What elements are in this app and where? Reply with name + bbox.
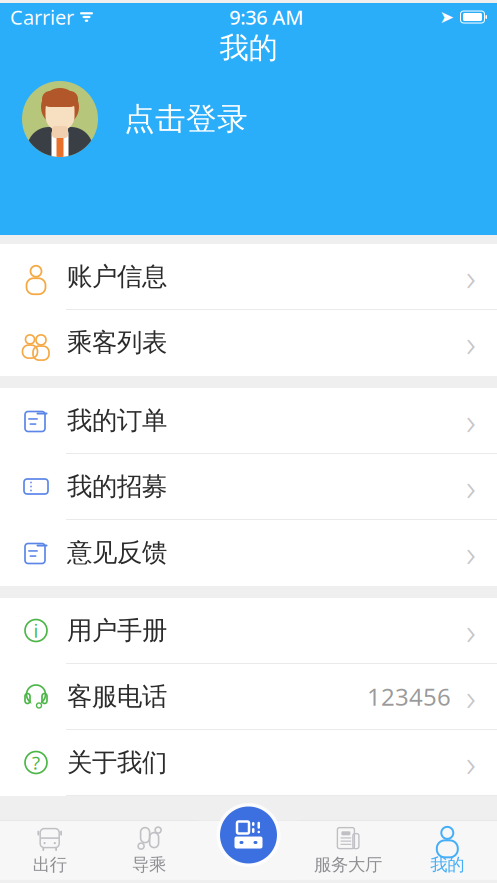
- button[interactable]: 账户信息: [0, 244, 497, 310]
- button[interactable]: ?: [0, 730, 497, 796]
- staticText: 用户手册: [67, 615, 167, 646]
- staticText: ?: [32, 750, 40, 775]
- button[interactable]: 服务大厅: [298, 821, 398, 880]
- staticText: 出行: [33, 854, 67, 875]
- staticText: 123456: [367, 681, 451, 712]
- staticText: ›: [466, 672, 476, 721]
- staticText: 我的订单: [67, 405, 167, 436]
- staticText: Carrier: [10, 4, 74, 30]
- staticText: ›: [466, 738, 476, 787]
- button[interactable]: 我的订单: [0, 388, 497, 454]
- button[interactable]: 扫码乘车: [216, 803, 280, 867]
- button[interactable]: 我的: [398, 821, 497, 880]
- staticText: i: [33, 618, 38, 643]
- staticText: 点击登录: [124, 100, 248, 138]
- staticText: ›: [466, 606, 476, 655]
- staticText: 关于我们: [67, 747, 167, 778]
- button[interactable]: 客服电话: [0, 664, 497, 730]
- staticText: 我的: [430, 854, 464, 875]
- staticText: ›: [466, 252, 476, 301]
- button[interactable]: 乘客列表: [0, 310, 497, 376]
- staticText: ›: [466, 318, 476, 367]
- button[interactable]: 我的招募: [0, 454, 497, 520]
- staticText: 乘客列表: [67, 327, 167, 358]
- staticText: 我的招募: [67, 471, 167, 502]
- button[interactable]: 导乘: [99, 821, 199, 880]
- staticText: ➤: [439, 7, 454, 27]
- staticText: 客服电话: [67, 681, 167, 712]
- staticText: 9:36 AM: [229, 4, 303, 30]
- staticText: ›: [466, 396, 476, 445]
- button[interactable]: i: [0, 598, 497, 664]
- staticText: 意见反馈: [67, 537, 167, 568]
- button[interactable]: 出行: [0, 821, 99, 880]
- staticText: 服务大厅: [314, 854, 382, 875]
- staticText: 账户信息: [67, 261, 167, 292]
- button[interactable]: 意见反馈: [0, 520, 497, 586]
- staticText: 导乘: [132, 854, 166, 875]
- button[interactable]: 点击登录: [0, 71, 497, 167]
- staticText: ›: [466, 462, 476, 511]
- staticText: ›: [466, 528, 476, 577]
- staticText: 我的: [219, 30, 277, 66]
